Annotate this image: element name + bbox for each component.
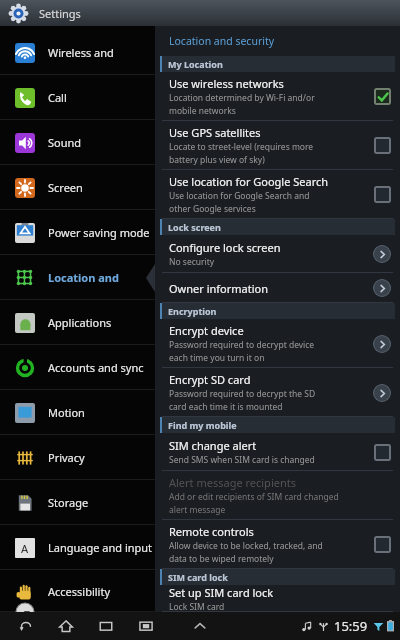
staticText: Sound [48,135,82,150]
staticText: Wireless and networks [48,45,155,60]
staticText: Call [48,90,67,105]
button[interactable]: Owner information [155,273,400,303]
staticText: Owner information [169,281,268,296]
button[interactable]: Use location for Google Search [155,170,400,219]
button[interactable]: Status [301,617,394,635]
staticText: alert message [169,504,226,516]
staticText: Power saving mode [48,225,150,240]
staticText: Send SMS when SIM card is changed [169,454,315,466]
button[interactable]: Remote controls [155,520,400,569]
staticText: other Google services [169,203,256,215]
staticText: Screen [48,180,83,195]
staticText: card each time it is mounted [169,401,283,413]
staticText: SIM card lock [168,571,228,583]
staticText: Locate to street-level (requires more [169,141,314,153]
staticText: Add or edit recipients of SIM card chang… [169,491,339,503]
staticText: Settings [39,6,81,21]
staticText: My Location [168,58,223,70]
button[interactable]: Home [55,615,77,637]
staticText: Lock screen [168,221,221,233]
staticText: Allow device to be locked, tracked, and [169,540,323,552]
staticText: Use location for Google Search and [169,190,310,202]
button[interactable]: SIM change alert [155,433,400,471]
button[interactable]: Use wireless networks [155,72,400,121]
button[interactable]: Alert message recipients [155,471,400,520]
button[interactable]: Call [0,75,155,120]
button[interactable]: Screenshot [135,615,157,637]
button[interactable]: Encrypt SD card [155,368,400,417]
button[interactable]: A [0,525,155,570]
button[interactable]: Accounts and sync [0,345,155,390]
staticText: Applications [48,315,112,330]
staticText: Motion [48,405,85,420]
button[interactable]: Show notifications [189,615,211,637]
staticText: Accounts and sync [48,360,144,375]
staticText: Encryption [168,305,217,317]
staticText: Use GPS satellites [169,125,261,140]
staticText: No security [169,256,215,268]
staticText: Password required to decrypt device [169,339,315,351]
staticText: Accessibility [48,584,111,599]
button[interactable]: Back [15,615,37,637]
staticText: Set up SIM card lock [169,585,274,600]
staticText: SIM change alert [169,438,257,453]
button[interactable]: Set up SIM card lock [155,585,400,612]
button[interactable]: Applications [0,300,155,345]
button[interactable]: Configure lock screen [155,235,400,273]
staticText: Encrypt device [169,323,244,338]
staticText: Configure lock screen [169,240,281,255]
staticText: each time you turn it on [169,352,265,364]
staticText: Location determined by Wi-Fi and/or [169,92,315,104]
staticText: Use wireless networks [169,76,284,91]
button[interactable]: Accessibility [0,570,155,612]
staticText: Location and security [169,34,275,48]
staticText: Language and input [48,540,153,555]
button[interactable]: Encrypt device [155,319,400,368]
staticText: 15:59 [334,617,368,635]
button[interactable]: Privacy [0,435,155,480]
button[interactable]: Use GPS satellites [155,121,400,170]
staticText: Lock SIM card [169,601,225,612]
button[interactable]: Recent apps [95,615,117,637]
staticText: data to be wiped remotely [169,553,274,565]
staticText: Encrypt SD card [169,372,251,387]
staticText: A [21,541,29,556]
button[interactable]: Wireless and networks [0,30,155,75]
button[interactable]: Screen [0,165,155,210]
staticText: Storage [48,495,89,510]
button[interactable]: Storage [0,480,155,525]
staticText: Find my mobile [168,419,237,431]
staticText: Privacy [48,450,85,465]
staticText: battery plus view of sky) [169,154,265,166]
button[interactable]: Power saving mode [0,210,155,255]
button[interactable]: Motion [0,390,155,435]
staticText: Location and security [48,270,155,285]
button[interactable]: Location and security [0,255,155,300]
button[interactable]: Sound [0,120,155,165]
staticText: mobile networks [169,105,236,117]
staticText: Password required to decrypt the SD [169,388,316,400]
staticText: Remote controls [169,524,254,539]
staticText: Alert message recipients [169,475,296,490]
staticText: Use location for Google Search [169,174,329,189]
